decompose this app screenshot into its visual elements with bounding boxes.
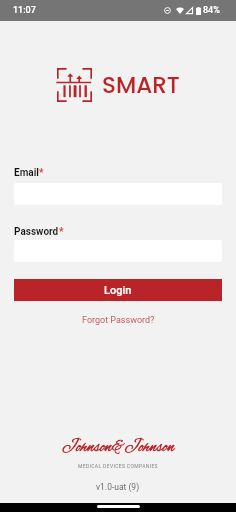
other: SMART logo [57, 68, 92, 102]
button[interactable]: Login [14, 279, 222, 301]
staticText: MEDICAL DEVICES COMPANIES [78, 463, 158, 469]
staticText: 84% [203, 5, 220, 16]
staticText: Login [104, 284, 132, 297]
staticText: v1.0-uat (9) [96, 482, 140, 492]
staticText: * [59, 226, 64, 238]
staticText: Password [14, 226, 59, 238]
button[interactable]: Forgot Password? [74, 301, 163, 336]
staticText: * [39, 167, 44, 179]
staticText: Forgot Password? [82, 315, 155, 326]
staticText: SMART [102, 69, 180, 101]
staticText: 11:07 [13, 5, 36, 16]
staticText: Email [14, 167, 39, 179]
staticText: Johnson&Johnson [62, 437, 175, 458]
